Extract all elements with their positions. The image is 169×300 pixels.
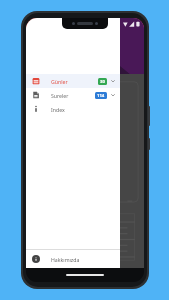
button[interactable]: Günler	[26, 74, 120, 88]
button[interactable]: Hakkımızda	[26, 250, 120, 268]
button[interactable]: Index	[26, 102, 120, 116]
staticText: 114	[97, 93, 105, 99]
staticText: Sureler	[51, 92, 69, 99]
other: Expand	[110, 78, 116, 84]
staticText: Hakkımızda	[51, 256, 80, 263]
staticText: Günler	[51, 78, 68, 85]
staticText: 30	[100, 79, 105, 85]
other: Expand	[110, 92, 116, 98]
button[interactable]: Sureler	[26, 88, 120, 102]
staticText: Index	[51, 106, 65, 113]
